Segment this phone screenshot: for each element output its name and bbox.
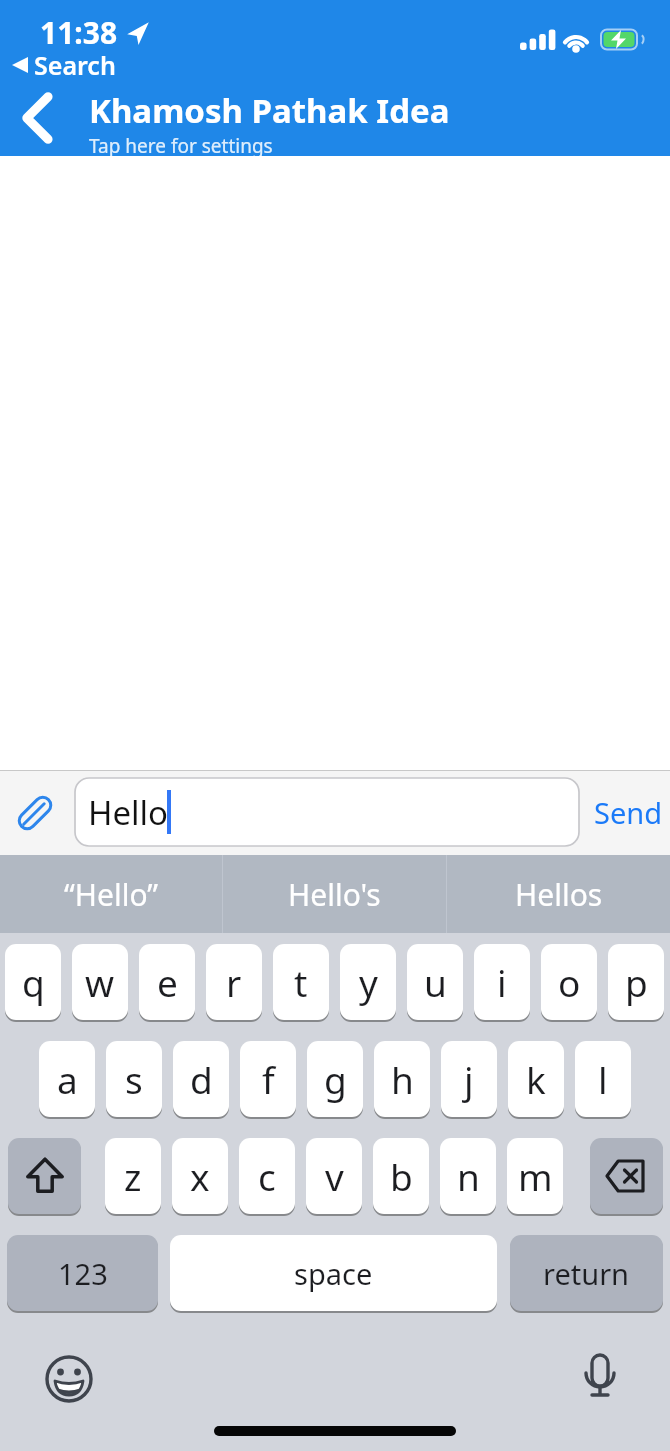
staticText: b — [390, 1151, 413, 1201]
staticText: g — [324, 1054, 347, 1104]
button[interactable]: return — [510, 1235, 663, 1311]
staticText: space — [294, 1254, 373, 1293]
button[interactable]: p — [608, 944, 664, 1020]
button[interactable]: y — [340, 944, 396, 1020]
button[interactable]: a — [39, 1041, 95, 1117]
staticText: u — [424, 957, 447, 1007]
staticText: m — [518, 1151, 553, 1201]
button[interactable] — [590, 1138, 663, 1214]
button[interactable]: “Hello” — [0, 855, 222, 933]
button[interactable]: b — [373, 1138, 429, 1214]
button[interactable]: Khamosh Pathak Idea — [89, 88, 450, 159]
staticText: c — [258, 1151, 276, 1201]
button[interactable]: Search — [12, 48, 116, 82]
button[interactable]: Hello's — [223, 855, 446, 933]
button[interactable]: q — [5, 944, 61, 1020]
staticText: p — [625, 957, 648, 1007]
button[interactable]: o — [541, 944, 597, 1020]
button[interactable]: k — [508, 1041, 564, 1117]
button[interactable]: x — [172, 1138, 228, 1214]
staticText: “Hello” — [64, 874, 159, 915]
staticText: j — [464, 1054, 474, 1104]
staticText: a — [57, 1054, 78, 1104]
staticText: Hellos — [515, 874, 603, 915]
staticText: e — [157, 957, 178, 1007]
button[interactable]: r — [206, 944, 262, 1020]
staticText: h — [391, 1054, 414, 1104]
staticText: z — [124, 1151, 142, 1201]
staticText: n — [457, 1151, 480, 1201]
button[interactable]: Hellos — [447, 855, 670, 933]
button[interactable]: v — [306, 1138, 362, 1214]
staticText: x — [190, 1151, 210, 1201]
button[interactable]: space — [170, 1235, 497, 1311]
button[interactable] — [45, 1355, 93, 1403]
staticText: r — [226, 957, 242, 1007]
staticText: d — [190, 1054, 213, 1104]
button[interactable]: j — [441, 1041, 497, 1117]
button[interactable]: e — [139, 944, 195, 1020]
button[interactable]: w — [72, 944, 128, 1020]
button[interactable]: i — [474, 944, 530, 1020]
button[interactable]: n — [440, 1138, 496, 1214]
button[interactable]: d — [173, 1041, 229, 1117]
staticText: 123 — [58, 1254, 108, 1293]
staticText: q — [22, 957, 45, 1007]
button[interactable] — [11, 789, 59, 837]
staticText: t — [294, 957, 308, 1007]
button[interactable]: 123 — [7, 1235, 158, 1311]
staticText: Khamosh Pathak Idea — [89, 88, 450, 133]
button[interactable]: f — [240, 1041, 296, 1117]
staticText: s — [125, 1054, 143, 1104]
staticText: y — [359, 957, 378, 1007]
button[interactable]: z — [105, 1138, 161, 1214]
staticText: w — [85, 957, 115, 1007]
button[interactable]: c — [239, 1138, 295, 1214]
button[interactable]: s — [106, 1041, 162, 1117]
staticText: return — [543, 1254, 630, 1293]
button[interactable]: h — [374, 1041, 430, 1117]
button[interactable] — [10, 90, 66, 146]
staticText: Send — [594, 793, 663, 832]
staticText: 11:38 — [40, 12, 118, 53]
staticText: i — [497, 957, 507, 1007]
button[interactable]: l — [575, 1041, 631, 1117]
staticText: Hello — [88, 790, 169, 835]
button[interactable]: t — [273, 944, 329, 1020]
staticText: k — [526, 1054, 546, 1104]
staticText: o — [558, 957, 581, 1007]
staticText: Hello's — [288, 874, 381, 915]
staticText: Tap here for settings — [89, 133, 273, 159]
staticText: l — [598, 1054, 608, 1104]
button[interactable]: Hello — [75, 778, 579, 846]
staticText: v — [325, 1151, 344, 1201]
button[interactable]: u — [407, 944, 463, 1020]
staticText: f — [262, 1054, 275, 1104]
button[interactable]: g — [307, 1041, 363, 1117]
button[interactable]: Send — [586, 770, 670, 855]
button[interactable]: m — [507, 1138, 563, 1214]
button[interactable] — [8, 1138, 81, 1214]
staticText: Search — [34, 48, 116, 82]
